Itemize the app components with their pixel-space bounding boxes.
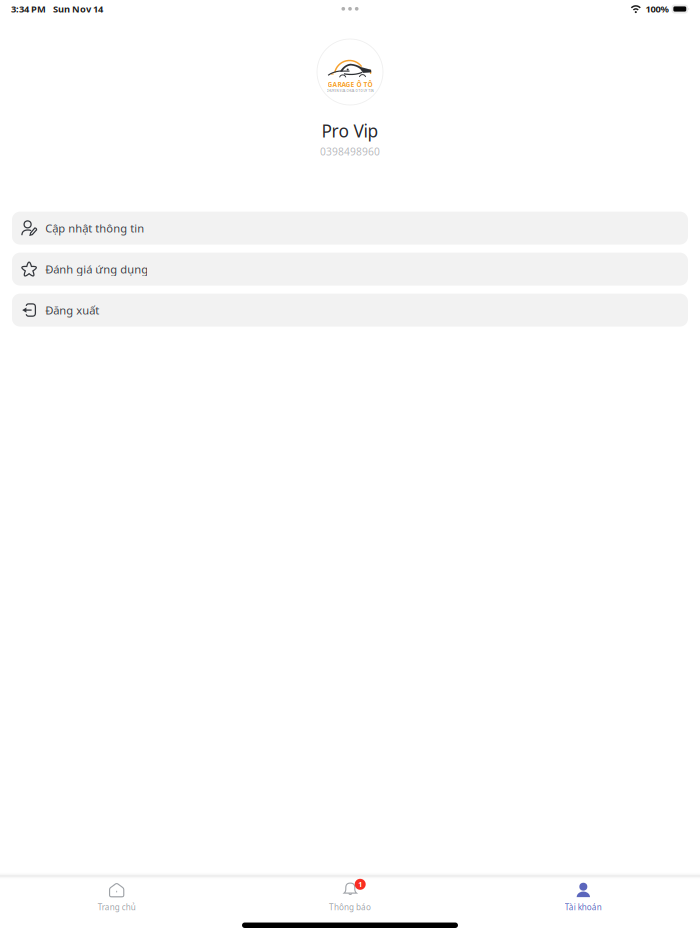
staticText: Pro Vip: [321, 119, 378, 143]
staticText: Tài khoản: [565, 901, 602, 913]
staticText: GARAGE Ô TÔ: [327, 80, 372, 89]
button[interactable]: Đánh giá ứng dụng: [12, 253, 688, 286]
button[interactable]: Cập nhật thông tin: [12, 212, 688, 245]
staticText: 3:34 PM: [11, 3, 46, 15]
staticText: Cập nhật thông tin: [45, 220, 144, 236]
staticText: Đánh giá ứng dụng: [45, 261, 148, 277]
button[interactable]: 1: [233, 878, 467, 913]
button[interactable]: Đăng xuất: [12, 294, 688, 327]
staticText: 1: [358, 879, 362, 889]
staticText: Thông báo: [329, 901, 371, 913]
staticText: 100%: [646, 3, 669, 15]
staticText: Đăng xuất: [45, 302, 99, 318]
button[interactable]: Tài khoản: [467, 878, 700, 913]
staticText: 0398498960: [320, 145, 380, 159]
staticText: Sun Nov 14: [53, 3, 103, 15]
staticText: CHUYÊN SỬA CHỮA Ô TÔ UY TÍN: [326, 89, 373, 93]
button[interactable]: Trang chủ: [0, 878, 233, 913]
staticText: Trang chủ: [98, 901, 136, 913]
